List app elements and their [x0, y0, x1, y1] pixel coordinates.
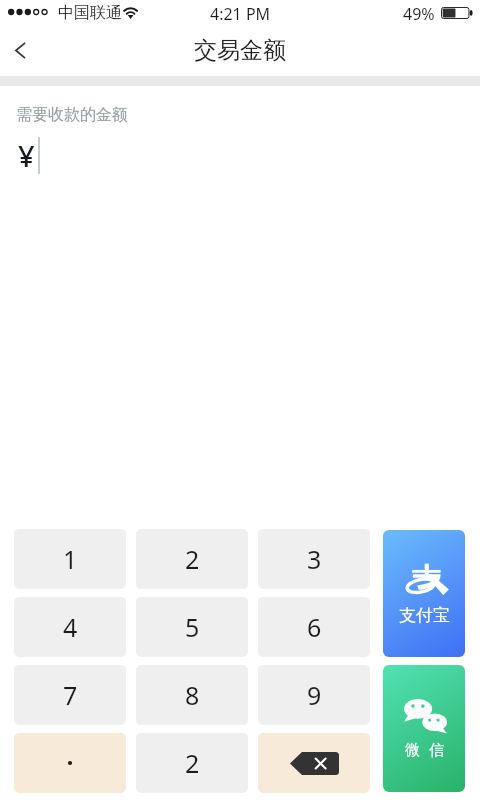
staticText: 6 — [307, 610, 322, 644]
staticText: 5 — [185, 610, 200, 644]
button[interactable]: 2 — [136, 733, 248, 793]
button[interactable]: 6 — [258, 597, 370, 657]
staticText: 2 — [185, 746, 200, 780]
button[interactable]: Back — [0, 26, 48, 76]
button[interactable]: WeChat Pay — [383, 665, 465, 792]
staticText: 微 — [405, 741, 420, 760]
button[interactable]: 7 — [14, 665, 126, 725]
button[interactable]: Alipay — [383, 530, 465, 657]
staticText: 需要收款的金额 — [16, 105, 128, 125]
staticText: 交易金额 — [194, 36, 286, 65]
staticText: 中国联通 — [58, 3, 122, 23]
button[interactable]: 8 — [136, 665, 248, 725]
staticText: 8 — [185, 678, 200, 712]
staticText: ¥ — [18, 136, 35, 175]
staticText: 支付宝 — [399, 605, 450, 626]
button[interactable]: 5 — [136, 597, 248, 657]
button[interactable]: 3 — [258, 529, 370, 589]
button[interactable]: 2 — [136, 529, 248, 589]
button[interactable]: 4 — [14, 597, 126, 657]
button[interactable]: 1 — [14, 529, 126, 589]
staticText: 7 — [63, 678, 78, 712]
staticText: 49% — [403, 3, 435, 25]
button[interactable]: Delete — [258, 733, 370, 793]
staticText: 1 — [63, 542, 78, 576]
button[interactable]: 9 — [258, 665, 370, 725]
staticText: 信 — [429, 741, 444, 760]
button[interactable] — [14, 733, 126, 793]
staticText: 9 — [307, 678, 322, 712]
staticText: 2 — [185, 542, 200, 576]
staticText: 3 — [307, 542, 322, 576]
staticText: 4:21 PM — [210, 3, 271, 25]
staticText: 4 — [63, 610, 78, 644]
